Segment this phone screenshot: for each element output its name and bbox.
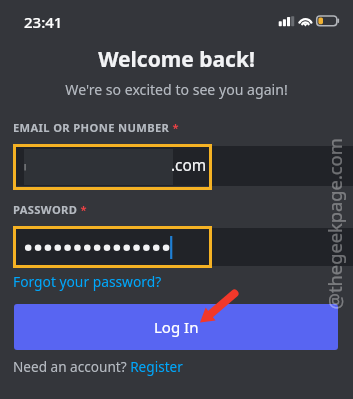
staticText: EMAIL OR PHONE NUMBER * xyxy=(13,120,179,135)
staticText: PASSWORD * xyxy=(13,202,88,217)
button[interactable]: .com xyxy=(14,146,353,186)
button[interactable]: Forgot your password? xyxy=(13,272,162,291)
staticText: .com xyxy=(171,155,207,176)
staticText: Welcome back! xyxy=(0,45,353,74)
staticText: Log In xyxy=(154,317,199,337)
staticText: We're so excited to see you again! xyxy=(0,80,353,99)
staticText: @thegeekpage.com xyxy=(321,137,346,309)
button[interactable] xyxy=(14,228,353,266)
staticText: 23:41 xyxy=(24,12,63,32)
button[interactable]: Log In xyxy=(14,304,338,350)
button[interactable]: Need an account? Register xyxy=(13,357,183,376)
